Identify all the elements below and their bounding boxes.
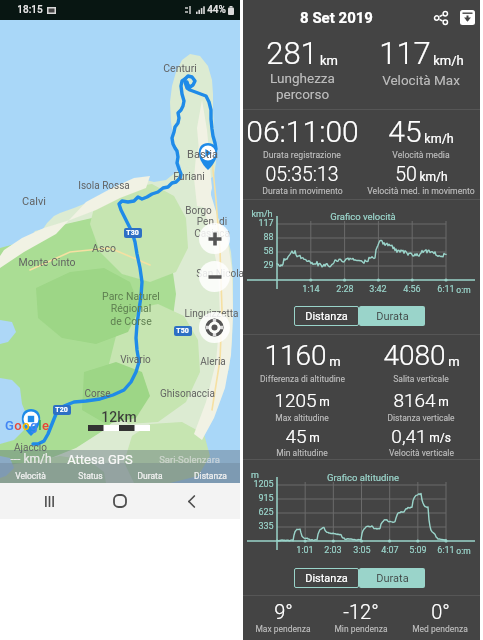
staticText: Velocità	[15, 471, 46, 481]
staticText: Monte Cinto	[18, 256, 76, 268]
staticText: 4:07	[381, 545, 399, 556]
staticText: o	[22, 418, 30, 433]
staticText: Ghisonaccia	[160, 388, 215, 400]
staticText: o:m	[456, 285, 471, 295]
staticText: Salita verticale	[393, 374, 449, 384]
staticText: G	[5, 418, 14, 433]
staticText: 3:05	[353, 545, 371, 556]
staticText: Vivario	[120, 354, 151, 366]
staticText: Distanza	[305, 572, 348, 585]
staticText: 2:03	[324, 545, 342, 556]
staticText: 8 Set 2019	[300, 9, 373, 27]
staticText: Max pendenza	[255, 624, 311, 634]
staticText: Durata	[376, 310, 409, 323]
staticText: Sari-Solenzara	[159, 454, 220, 465]
staticText: 1:14	[302, 284, 320, 295]
staticText: Velocità verticale	[389, 448, 454, 458]
staticText: 29	[263, 260, 274, 271]
staticText: 58	[263, 246, 274, 257]
staticText: -12°	[343, 600, 379, 623]
button[interactable]: My location	[199, 312, 230, 343]
staticText: Borgo	[185, 205, 212, 217]
staticText: 88	[263, 232, 274, 243]
button[interactable]: Zoom in	[199, 223, 230, 254]
button[interactable]: Home	[98, 483, 142, 519]
staticText: m	[448, 354, 460, 369]
button[interactable]: Distanza	[294, 568, 359, 588]
staticText: Status	[78, 471, 103, 481]
staticText: 44%	[207, 4, 226, 16]
staticText: Durata	[137, 471, 163, 481]
button[interactable]: Durata	[359, 568, 425, 588]
staticText: 1160	[264, 339, 327, 372]
staticText: Aleria	[200, 356, 226, 368]
staticText: --- km/h	[10, 452, 52, 466]
staticText: Velocità media	[392, 150, 450, 160]
staticText: Max altitudine	[275, 413, 329, 423]
staticText: Durata	[376, 572, 409, 585]
staticText: 1205	[253, 479, 274, 490]
staticText: 335	[258, 521, 274, 532]
button[interactable]: Zoom out	[199, 261, 230, 292]
staticText: km/h	[251, 209, 273, 220]
staticText: T20	[55, 406, 68, 414]
staticText: 281	[266, 35, 318, 71]
staticText: 8164	[393, 389, 436, 411]
staticText: 45	[285, 425, 307, 447]
staticText: 1:01	[296, 545, 314, 556]
staticText: Velocità Max	[382, 72, 460, 88]
staticText: 625	[258, 507, 274, 518]
staticText: km/h	[424, 131, 454, 146]
button[interactable]: Durata	[359, 306, 425, 326]
staticText: Durata registrazione	[263, 150, 341, 160]
staticText: 9°	[274, 600, 293, 623]
staticText: San Nicolao	[196, 268, 250, 280]
staticText: T50	[176, 327, 189, 335]
staticText: m	[309, 431, 320, 445]
button[interactable]: Distanza	[294, 306, 359, 326]
staticText: 5:09	[409, 545, 427, 556]
staticText: 0°	[431, 600, 450, 623]
staticText: Differenza di altitudine	[260, 374, 345, 384]
staticText: 2:28	[336, 284, 354, 295]
staticText: Grafico altitudine	[327, 472, 399, 483]
staticText: 18:15	[17, 4, 43, 16]
staticText: 6:11	[437, 545, 455, 556]
button[interactable]: Back	[169, 483, 213, 519]
staticText: m	[251, 470, 259, 481]
staticText: Distanza verticale	[387, 413, 455, 423]
staticText: Min pendenza	[334, 624, 388, 634]
staticText: 0,41	[391, 425, 427, 447]
staticText: l	[38, 418, 42, 433]
staticText: T30	[126, 229, 139, 237]
staticText: Asco	[92, 242, 116, 254]
staticText: Velocità med. in movimento	[367, 186, 475, 196]
button[interactable]: Share	[427, 4, 454, 31]
staticText: Pen. di Casinca	[194, 216, 230, 240]
staticText: 915	[258, 493, 274, 504]
staticText: m/s	[429, 431, 451, 445]
staticText: Distanza	[194, 471, 227, 481]
staticText: Min altitudine	[276, 448, 328, 458]
staticText: 6:11	[437, 284, 455, 295]
staticText: m	[319, 395, 330, 409]
staticText: km/h	[419, 170, 448, 184]
staticText: Distanza	[305, 310, 348, 323]
staticText: Isola Rossa	[78, 180, 130, 192]
staticText: 12km	[101, 409, 137, 425]
staticText: km/h	[433, 53, 464, 68]
staticText: Linguizzetta	[184, 308, 239, 320]
staticText: e	[42, 418, 49, 433]
staticText: 3:42	[369, 284, 387, 295]
staticText: m	[329, 354, 341, 369]
staticText: 05:35:13	[265, 163, 339, 186]
staticText: Grafico velocità	[330, 211, 396, 222]
staticText: 45	[388, 114, 422, 149]
staticText: 4:56	[403, 284, 421, 295]
staticText: Med pendenza	[412, 624, 468, 634]
button[interactable]: Recents	[27, 483, 71, 519]
staticText: km	[320, 53, 338, 68]
button[interactable]: Export	[454, 4, 481, 31]
staticText: 117	[379, 35, 431, 71]
staticText: Bastia	[187, 148, 218, 161]
